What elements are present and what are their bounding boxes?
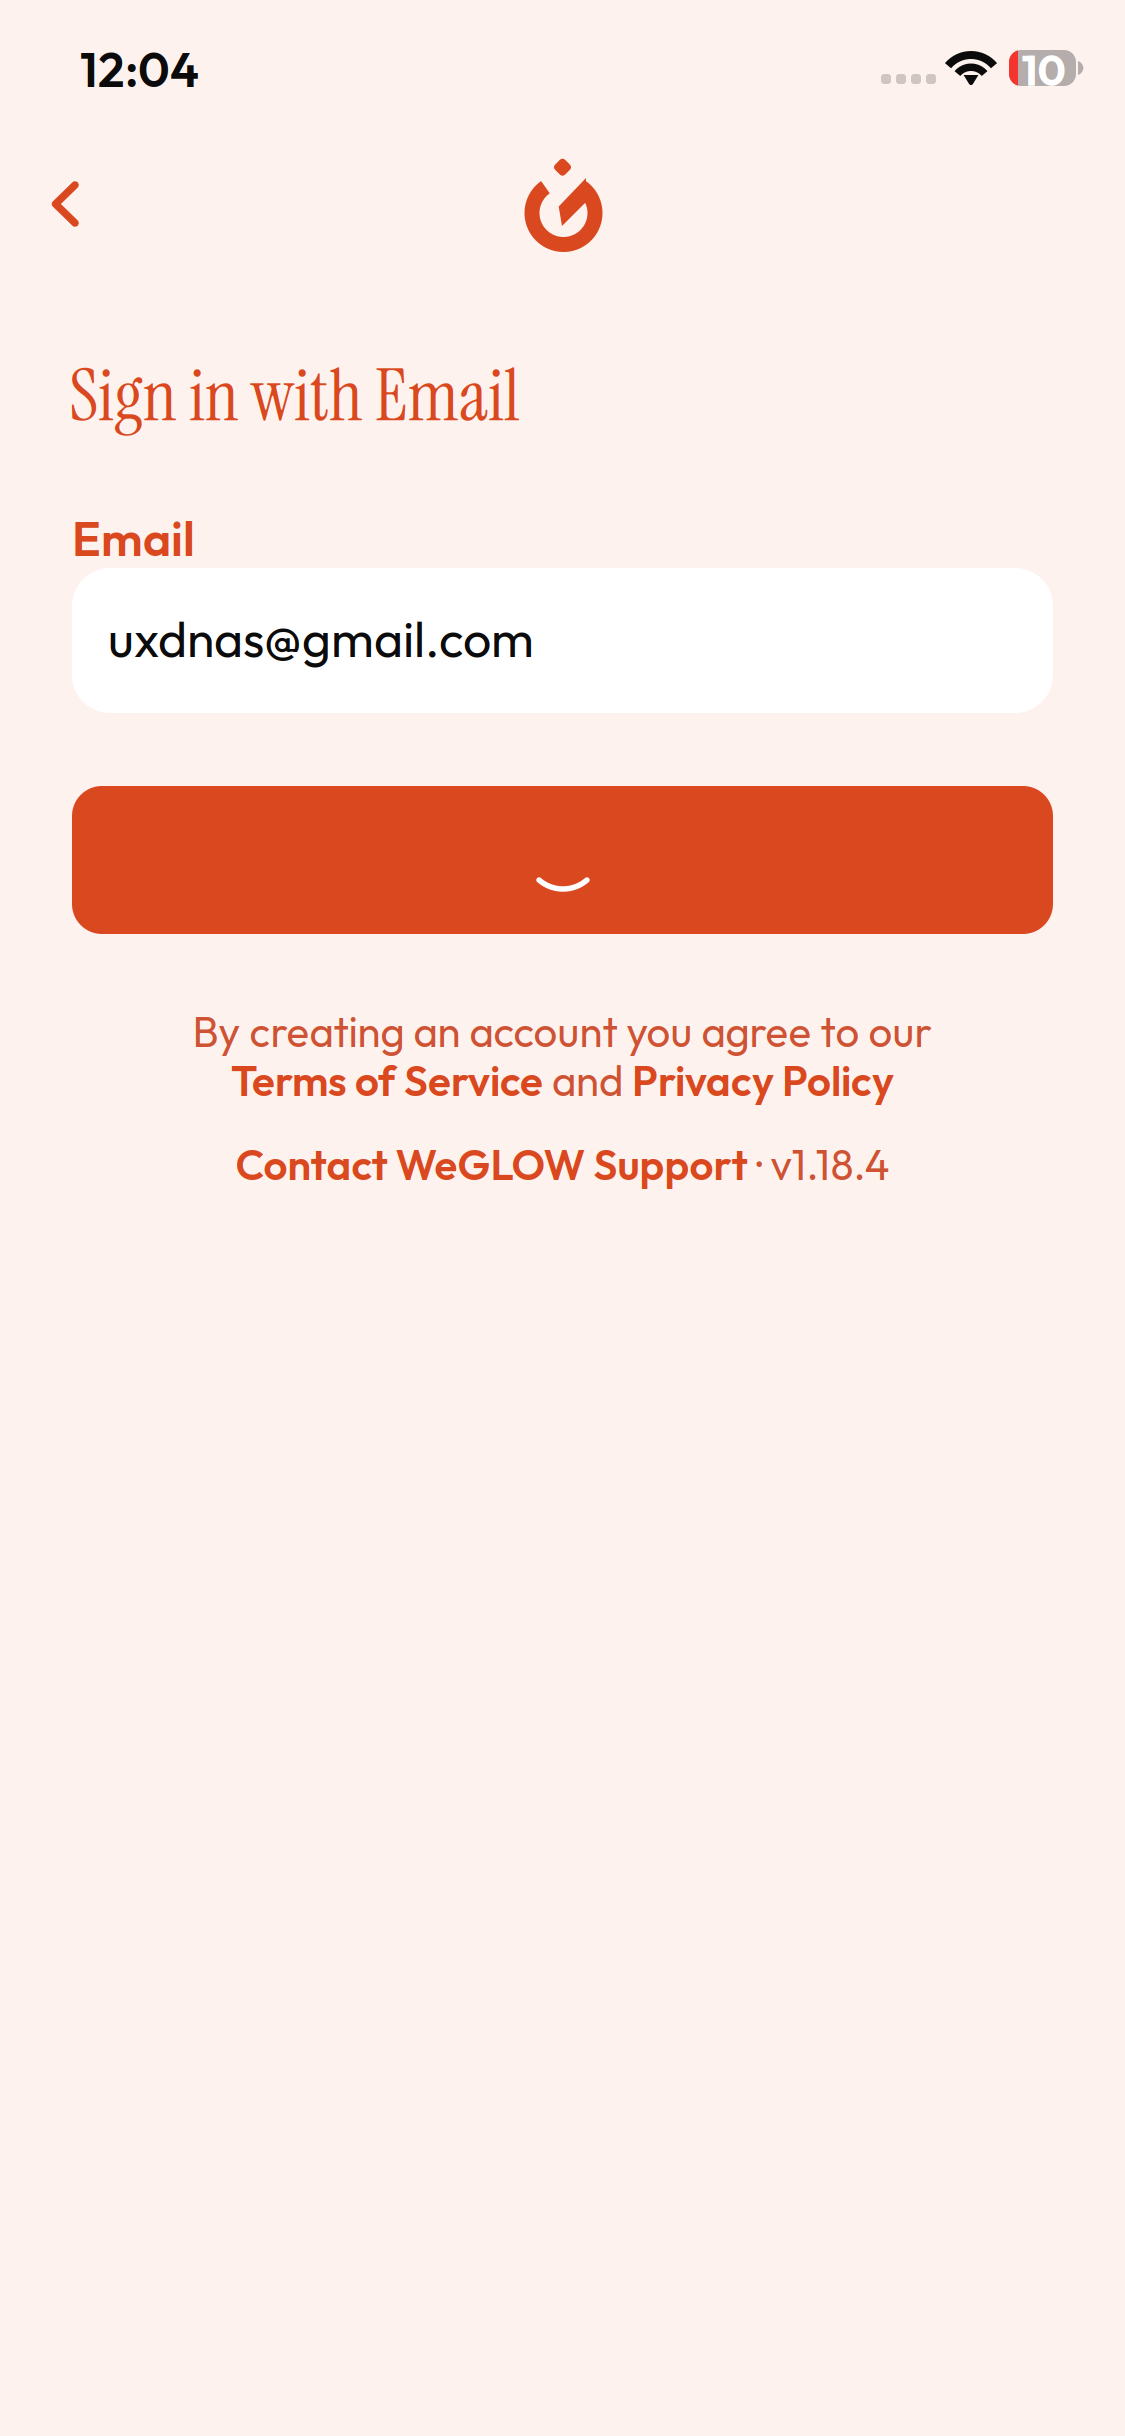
staticText: 12:04: [80, 39, 199, 99]
staticText: uxdnas@gmail.com: [108, 607, 534, 670]
staticText: and: [543, 1054, 632, 1107]
staticText: Contact WeGLOW Support: [235, 1138, 747, 1191]
staticText: v1.18.4: [770, 1138, 889, 1191]
staticText: Privacy Policy: [632, 1054, 894, 1107]
staticText: By creating an account you agree to our: [192, 1005, 932, 1058]
button[interactable]: Back: [15, 154, 115, 254]
staticText: 10: [1021, 43, 1065, 97]
button[interactable]: Contact WeGLOW Support: [235, 1138, 747, 1191]
staticText: Sign in with Email: [69, 349, 520, 443]
staticText: Terms of Service: [231, 1054, 543, 1107]
button[interactable]: Terms of Service: [231, 1054, 543, 1107]
button[interactable]: Continue: [72, 786, 1053, 934]
button[interactable]: uxdnas@gmail.com: [72, 568, 1053, 713]
staticText: Email: [72, 508, 195, 568]
staticText: ·: [747, 1138, 770, 1191]
button[interactable]: Privacy Policy: [632, 1054, 894, 1107]
